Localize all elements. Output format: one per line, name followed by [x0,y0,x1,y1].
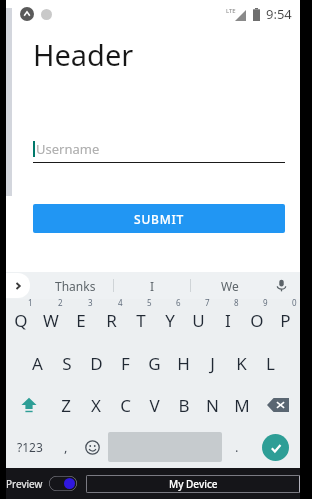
button[interactable]: I [213,299,242,342]
button[interactable]: G [140,342,169,384]
button[interactable]: J [198,342,227,384]
button[interactable]: O [242,299,271,342]
staticText: My Device [169,477,218,491]
button[interactable]: H [169,342,198,384]
staticText: X [91,394,101,417]
staticText: T [136,309,146,332]
staticText: 5 [147,297,152,308]
button[interactable]: K [227,342,256,384]
button[interactable]: My Device [86,475,300,493]
button[interactable]: F [111,342,140,384]
button[interactable]: Voice input [268,272,294,299]
staticText: K [236,352,247,375]
staticText: R [106,309,117,332]
staticText: Thanks [55,278,96,294]
button[interactable]: R [96,299,126,342]
staticText: 3 [88,297,93,308]
staticText: I [225,309,231,332]
staticText: V [149,394,160,417]
button[interactable]: V [140,384,169,426]
button[interactable]: I [114,272,191,299]
staticText: Q [14,309,28,332]
staticText: U [192,309,205,332]
button[interactable]: C [111,384,140,426]
staticText: S [62,352,72,375]
staticText: W [43,309,59,332]
staticText: , [64,438,68,456]
staticText: 8 [234,297,239,308]
button[interactable]: L [256,342,285,384]
staticText: P [280,309,291,332]
staticText: Preview [6,477,43,491]
staticText: Username [36,140,100,158]
staticText: B [178,394,190,417]
button[interactable]: S [52,342,82,384]
staticText: F [121,352,130,375]
button[interactable]: Emoji [77,426,108,468]
button[interactable]: Shift [6,384,51,426]
button[interactable]: Thanks [36,272,114,299]
button[interactable]: Z [51,384,81,426]
button[interactable]: SUBMIT [33,204,285,233]
staticText: E [76,309,86,332]
button[interactable]: . [222,426,251,468]
button[interactable]: Backspace [256,384,300,426]
button[interactable]: Expand suggestions [6,273,30,298]
staticText: 1 [28,297,33,308]
button[interactable]: ?123 [6,426,54,468]
button[interactable]: Y [155,299,184,342]
staticText: LTE [226,7,236,15]
button[interactable]: X [81,384,111,426]
staticText: . [235,438,239,456]
staticText: N [206,394,219,417]
staticText: A [32,352,43,375]
button[interactable]: Enter [251,426,300,468]
button[interactable]: Q [6,299,36,342]
staticText: 6 [176,297,181,308]
button[interactable]: A [22,342,52,384]
button[interactable]: Username [33,135,285,163]
button[interactable]: D [82,342,111,384]
button[interactable]: P [271,299,300,342]
button[interactable]: We [191,272,268,299]
staticText: M [234,394,250,417]
staticText: G [148,352,161,375]
staticText: J [210,352,215,375]
button[interactable]: B [169,384,198,426]
staticText: ?123 [17,439,43,455]
staticText: C [120,394,131,417]
staticText: Header [33,35,134,74]
button[interactable]: E [66,299,96,342]
button[interactable]: M [227,384,256,426]
staticText: O [250,309,264,332]
staticText: I [150,278,155,294]
staticText: We [221,278,239,294]
staticText: 4 [118,297,123,308]
staticText: Y [165,309,175,332]
staticText: 9:54 [266,5,292,23]
staticText: L [266,352,275,375]
staticText: Z [61,394,71,417]
staticText: 9 [263,297,268,308]
button[interactable]: W [36,299,66,342]
staticText: D [90,352,103,375]
staticText: 0 [292,297,297,308]
button[interactable]: Toggle preview [49,476,77,491]
staticText: SUBMIT [134,211,185,227]
button[interactable]: N [198,384,227,426]
staticText: 7 [205,297,210,308]
staticText: H [177,352,190,375]
staticText: 2 [58,297,63,308]
button[interactable]: , [54,426,77,468]
button[interactable]: U [184,299,213,342]
button[interactable]: T [126,299,155,342]
